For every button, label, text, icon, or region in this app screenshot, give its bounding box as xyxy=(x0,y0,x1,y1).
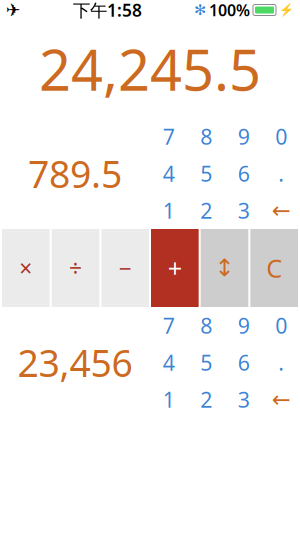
staticText: . xyxy=(278,348,284,377)
staticText: 1 xyxy=(163,385,175,414)
button[interactable]: 9 xyxy=(225,307,262,344)
staticText: 1 xyxy=(163,196,175,225)
staticText: 2 xyxy=(200,196,212,225)
staticText: 6 xyxy=(238,159,250,188)
staticText: 7 xyxy=(163,311,175,340)
staticText: ✈ xyxy=(6,0,21,20)
staticText: ↕ xyxy=(214,254,234,282)
staticText: 24,245.5 xyxy=(39,32,261,106)
button[interactable]: 8 xyxy=(187,118,225,155)
button[interactable]: 4 xyxy=(150,344,187,381)
staticText: 23,456 xyxy=(17,338,132,387)
staticText: C xyxy=(266,251,282,285)
button[interactable]: × xyxy=(2,229,50,307)
staticText: 789.5 xyxy=(28,149,122,198)
staticText: . xyxy=(278,159,284,188)
staticText: 3 xyxy=(238,196,250,225)
staticText: ← xyxy=(272,387,291,412)
button[interactable]: 2 xyxy=(187,381,225,418)
staticText: 9 xyxy=(238,311,250,340)
staticText: 3 xyxy=(238,385,250,414)
staticText: 4 xyxy=(163,159,175,188)
button[interactable]: ← xyxy=(262,381,300,418)
button[interactable]: 7 xyxy=(150,118,187,155)
button[interactable]: 0 xyxy=(262,118,300,155)
button[interactable]: 3 xyxy=(225,381,262,418)
button[interactable]: 6 xyxy=(225,344,262,381)
button[interactable]: 6 xyxy=(225,155,262,192)
button[interactable]: 4 xyxy=(150,155,187,192)
button[interactable]: + xyxy=(151,229,199,307)
staticText: 0 xyxy=(275,122,287,151)
staticText: 6 xyxy=(238,348,250,377)
button[interactable]: 1 xyxy=(150,192,187,229)
staticText: ÷ xyxy=(69,253,82,283)
button[interactable]: ↕ xyxy=(201,229,248,307)
button[interactable]: 5 xyxy=(187,155,225,192)
staticText: 5 xyxy=(200,159,212,188)
staticText: × xyxy=(19,253,32,283)
button[interactable]: . xyxy=(262,344,300,381)
staticText: 5 xyxy=(200,348,212,377)
button[interactable]: − xyxy=(101,229,149,307)
staticText: 100% xyxy=(209,0,250,21)
button[interactable]: 0 xyxy=(262,307,300,344)
staticText: ✻ xyxy=(194,2,206,18)
staticText: + xyxy=(168,251,182,285)
staticText: ← xyxy=(272,198,291,223)
staticText: ⚡ xyxy=(279,3,294,17)
staticText: 8 xyxy=(200,311,212,340)
button[interactable]: 2 xyxy=(187,192,225,229)
button[interactable]: ← xyxy=(262,192,300,229)
button[interactable]: 7 xyxy=(150,307,187,344)
staticText: 2 xyxy=(200,385,212,414)
staticText: 4 xyxy=(163,348,175,377)
button[interactable]: ÷ xyxy=(52,229,99,307)
button[interactable]: 3 xyxy=(225,192,262,229)
staticText: 9 xyxy=(238,122,250,151)
button[interactable]: C xyxy=(250,229,298,307)
staticText: 7 xyxy=(163,122,175,151)
button[interactable]: 9 xyxy=(225,118,262,155)
button[interactable]: 5 xyxy=(187,344,225,381)
button[interactable]: . xyxy=(262,155,300,192)
staticText: − xyxy=(119,253,132,283)
staticText: 0 xyxy=(275,311,287,340)
button[interactable]: 8 xyxy=(187,307,225,344)
staticText: 下午1:58 xyxy=(73,0,142,21)
staticText: 8 xyxy=(200,122,212,151)
button[interactable]: 1 xyxy=(150,381,187,418)
